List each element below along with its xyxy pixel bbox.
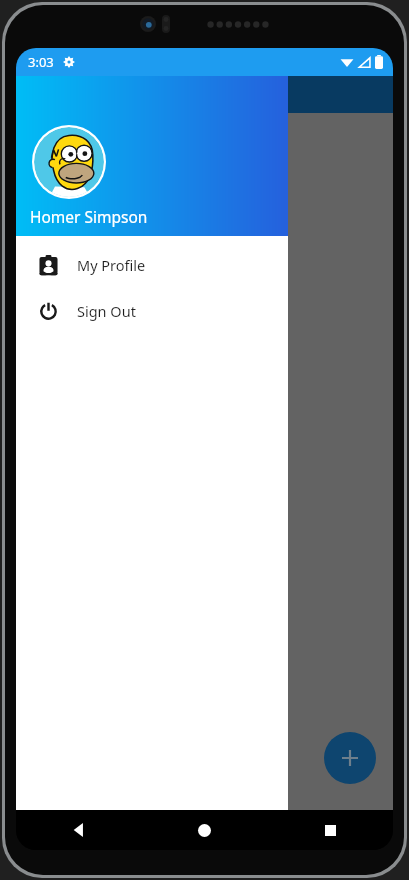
button[interactable]: Sign Out: [16, 288, 288, 334]
staticText: My Profile: [77, 255, 146, 275]
button[interactable]: Home: [141, 810, 267, 850]
button[interactable]: Add: [324, 732, 376, 784]
button[interactable]: Recent apps: [267, 810, 393, 850]
staticText: 3:03: [28, 53, 54, 71]
staticText: Homer Simpson: [30, 206, 148, 227]
button[interactable]: My Profile: [16, 242, 288, 288]
button[interactable]: Back: [16, 810, 141, 850]
staticText: Sign Out: [77, 301, 136, 321]
